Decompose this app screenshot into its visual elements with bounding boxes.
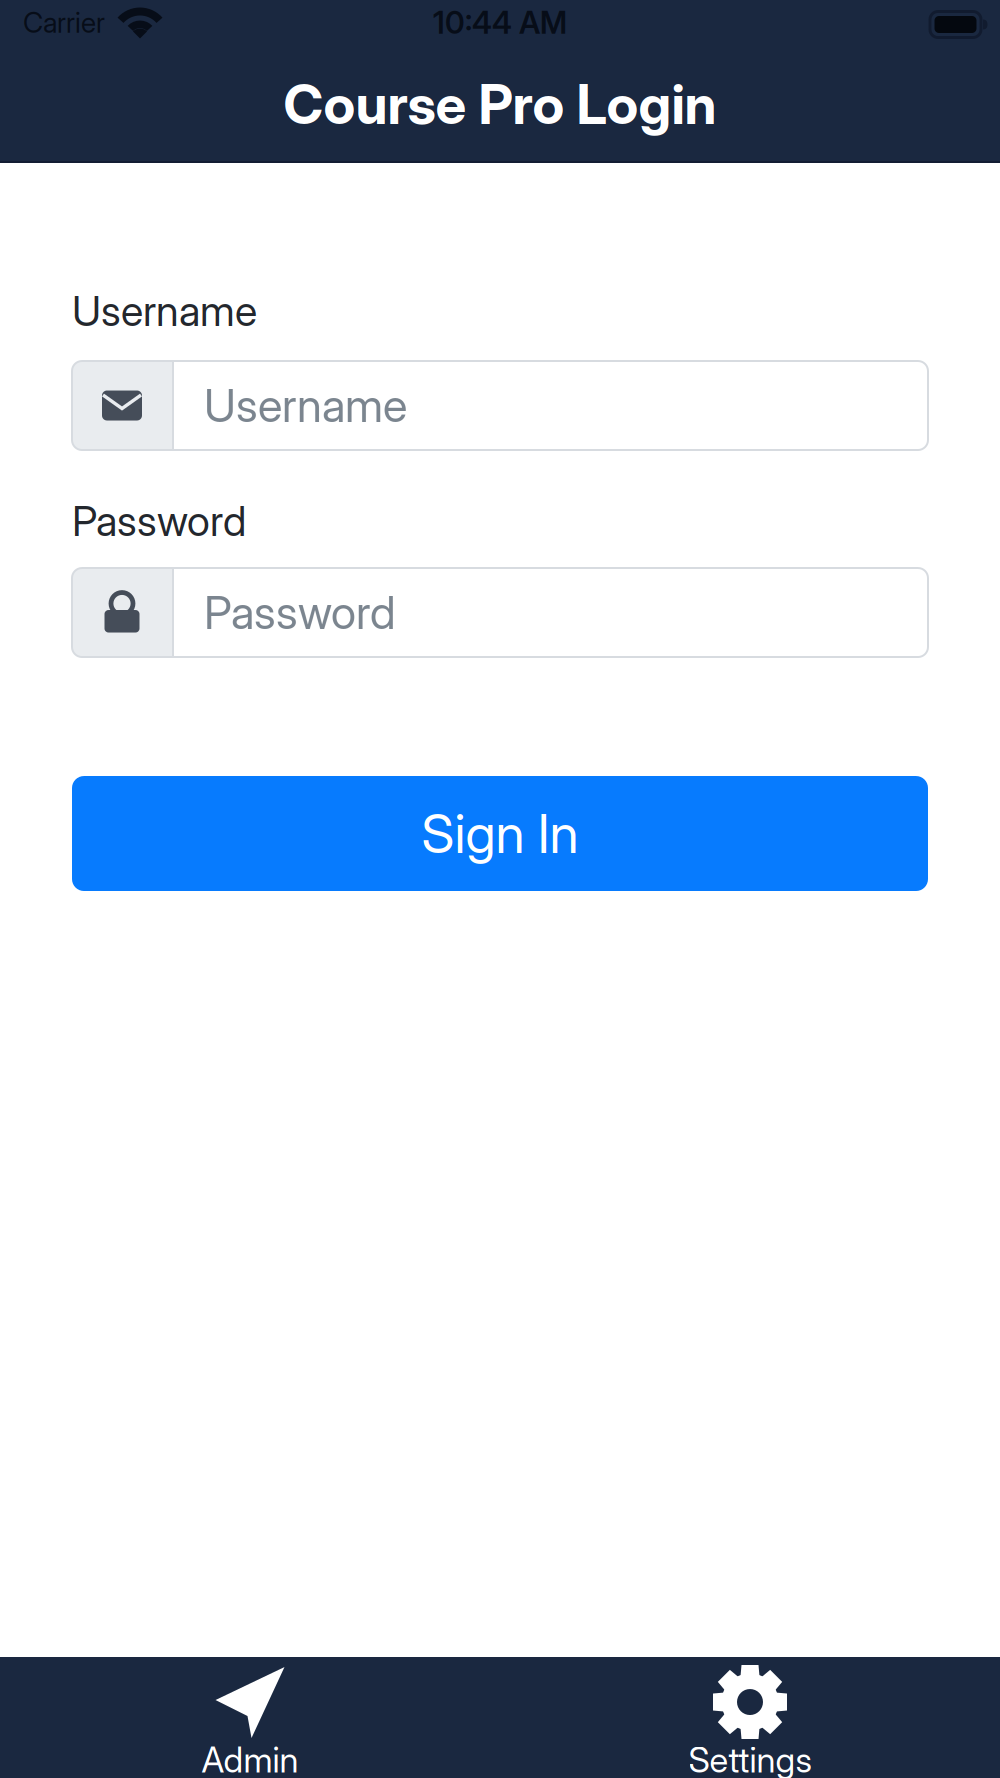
staticText: Password — [72, 496, 246, 546]
staticText: 10:44 AM — [433, 4, 567, 41]
staticText: Admin — [201, 1739, 298, 1778]
staticText: Course Pro Login — [283, 71, 716, 137]
button[interactable]: Sign In — [72, 776, 928, 891]
staticText: Sign In — [421, 801, 578, 866]
button[interactable]: Admin — [0, 1654, 500, 1778]
staticText: Settings — [688, 1739, 811, 1778]
button[interactable]: Password — [72, 568, 928, 657]
staticText: Carrier — [23, 6, 105, 39]
staticText: Username — [204, 378, 407, 433]
button[interactable]: Username — [72, 361, 928, 450]
staticText: Username — [72, 286, 257, 336]
button[interactable]: Settings — [500, 1654, 1000, 1778]
staticText: Password — [204, 585, 396, 640]
